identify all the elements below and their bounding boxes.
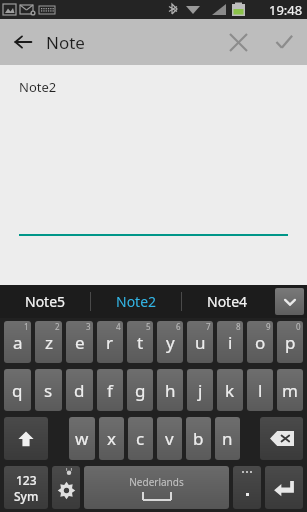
staticText: r bbox=[106, 331, 114, 354]
staticText: Sym bbox=[14, 488, 39, 504]
button[interactable]: Backspace bbox=[260, 417, 303, 460]
button[interactable]: b bbox=[186, 417, 211, 460]
staticText: 7 bbox=[206, 321, 211, 332]
button[interactable]: Shift bbox=[4, 417, 48, 460]
staticText: x bbox=[107, 427, 116, 450]
button[interactable]: h bbox=[157, 369, 183, 411]
button[interactable]: Back bbox=[0, 19, 46, 65]
button[interactable]: s bbox=[35, 369, 62, 411]
staticText: Note4 bbox=[207, 292, 248, 311]
staticText: 1 bbox=[24, 321, 29, 332]
button[interactable]: p bbox=[277, 321, 303, 363]
button[interactable]: r bbox=[97, 321, 123, 363]
button[interactable]: g bbox=[127, 369, 153, 411]
staticText: Note2 bbox=[19, 78, 57, 96]
button[interactable]: e bbox=[66, 321, 93, 363]
button[interactable]: Enter bbox=[265, 466, 303, 509]
button[interactable]: o bbox=[247, 321, 273, 363]
button[interactable]: z bbox=[35, 321, 62, 363]
staticText: l bbox=[258, 379, 263, 402]
button[interactable]: d bbox=[66, 369, 93, 411]
button[interactable]: a bbox=[4, 321, 31, 363]
button[interactable]: w bbox=[69, 417, 95, 460]
staticText: 2 bbox=[55, 321, 60, 332]
button[interactable]: i bbox=[217, 321, 243, 363]
staticText: f bbox=[107, 379, 113, 402]
button[interactable]: l bbox=[247, 369, 273, 411]
button[interactable]: Discard bbox=[215, 19, 261, 65]
staticText: 6 bbox=[176, 321, 181, 332]
staticText: y bbox=[166, 331, 175, 354]
staticText: 8 bbox=[236, 321, 241, 332]
button[interactable]: j bbox=[187, 369, 213, 411]
staticText: o bbox=[255, 331, 266, 354]
staticText: 5 bbox=[146, 321, 151, 332]
staticText: 123 bbox=[16, 472, 37, 488]
staticText: b bbox=[193, 427, 204, 450]
staticText: c bbox=[136, 427, 145, 450]
button[interactable]: t bbox=[127, 321, 153, 363]
staticText: Note2 bbox=[116, 292, 157, 311]
button[interactable]: Note5 bbox=[0, 285, 90, 318]
button[interactable]: Symbols bbox=[4, 466, 48, 509]
staticText: z bbox=[45, 331, 53, 354]
button[interactable]: More suggestions bbox=[275, 288, 304, 315]
staticText: h bbox=[165, 379, 176, 402]
button[interactable]: u bbox=[187, 321, 213, 363]
staticText: k bbox=[225, 379, 235, 402]
staticText: t bbox=[137, 331, 144, 354]
staticText: 4 bbox=[116, 321, 121, 332]
staticText: e bbox=[75, 331, 85, 354]
staticText: m bbox=[282, 379, 298, 402]
staticText: i bbox=[228, 331, 233, 354]
button[interactable]: Settings bbox=[52, 466, 80, 509]
staticText: 3 bbox=[86, 321, 91, 332]
button[interactable]: q bbox=[4, 369, 31, 411]
button[interactable]: x bbox=[99, 417, 124, 460]
staticText: s bbox=[44, 379, 53, 402]
staticText: d bbox=[74, 379, 85, 402]
staticText: a bbox=[13, 331, 23, 354]
button[interactable]: c bbox=[128, 417, 153, 460]
staticText: g bbox=[135, 379, 146, 402]
staticText: Note bbox=[46, 31, 85, 54]
staticText: 9 bbox=[266, 321, 271, 332]
button[interactable]: Space bbox=[84, 466, 229, 509]
staticText: v bbox=[165, 427, 174, 450]
button[interactable]: Save bbox=[261, 19, 307, 65]
staticText: w bbox=[75, 427, 89, 450]
button[interactable]: n bbox=[215, 417, 240, 460]
button[interactable]: f bbox=[97, 369, 123, 411]
button[interactable]: y bbox=[157, 321, 183, 363]
button[interactable]: Period bbox=[233, 466, 261, 509]
button[interactable]: m bbox=[277, 369, 303, 411]
staticText: Nederlands bbox=[129, 475, 184, 489]
staticText: n bbox=[222, 427, 233, 450]
staticText: u bbox=[195, 331, 206, 354]
staticText: p bbox=[285, 331, 296, 354]
button[interactable]: Note2 bbox=[91, 285, 181, 318]
staticText: q bbox=[12, 379, 23, 402]
button[interactable]: k bbox=[217, 369, 243, 411]
button[interactable]: Note4 bbox=[182, 285, 272, 318]
staticText: 0 bbox=[296, 321, 301, 332]
staticText: j bbox=[198, 379, 203, 402]
staticText: 19:48 bbox=[269, 1, 303, 19]
button[interactable]: v bbox=[157, 417, 182, 460]
staticText: Note5 bbox=[25, 292, 66, 311]
